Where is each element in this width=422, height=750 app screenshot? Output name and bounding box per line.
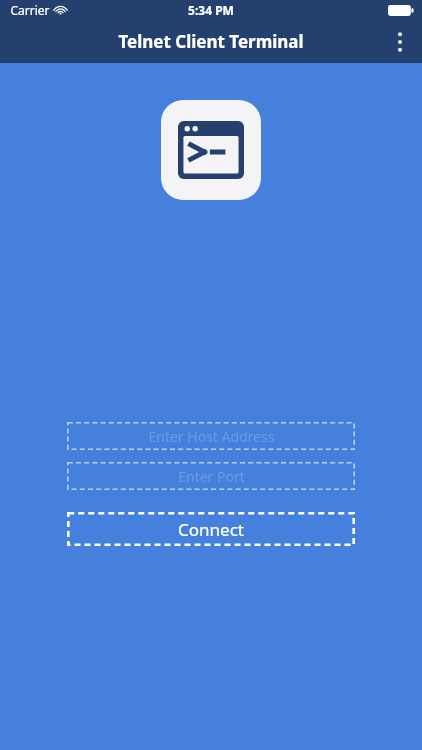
staticText: Connect	[178, 518, 244, 541]
button[interactable]: Enter Port	[67, 462, 355, 490]
button[interactable]: More options	[378, 20, 422, 63]
staticText: Telnet Client Terminal	[118, 30, 304, 53]
button[interactable]: Enter Host Address	[67, 422, 355, 450]
button[interactable]: Connect	[67, 512, 355, 546]
staticText: Carrier	[10, 2, 50, 18]
staticText: 5:34 PM	[188, 2, 234, 18]
staticText: Enter Host Address	[148, 427, 275, 446]
staticText: Enter Port	[178, 467, 245, 486]
